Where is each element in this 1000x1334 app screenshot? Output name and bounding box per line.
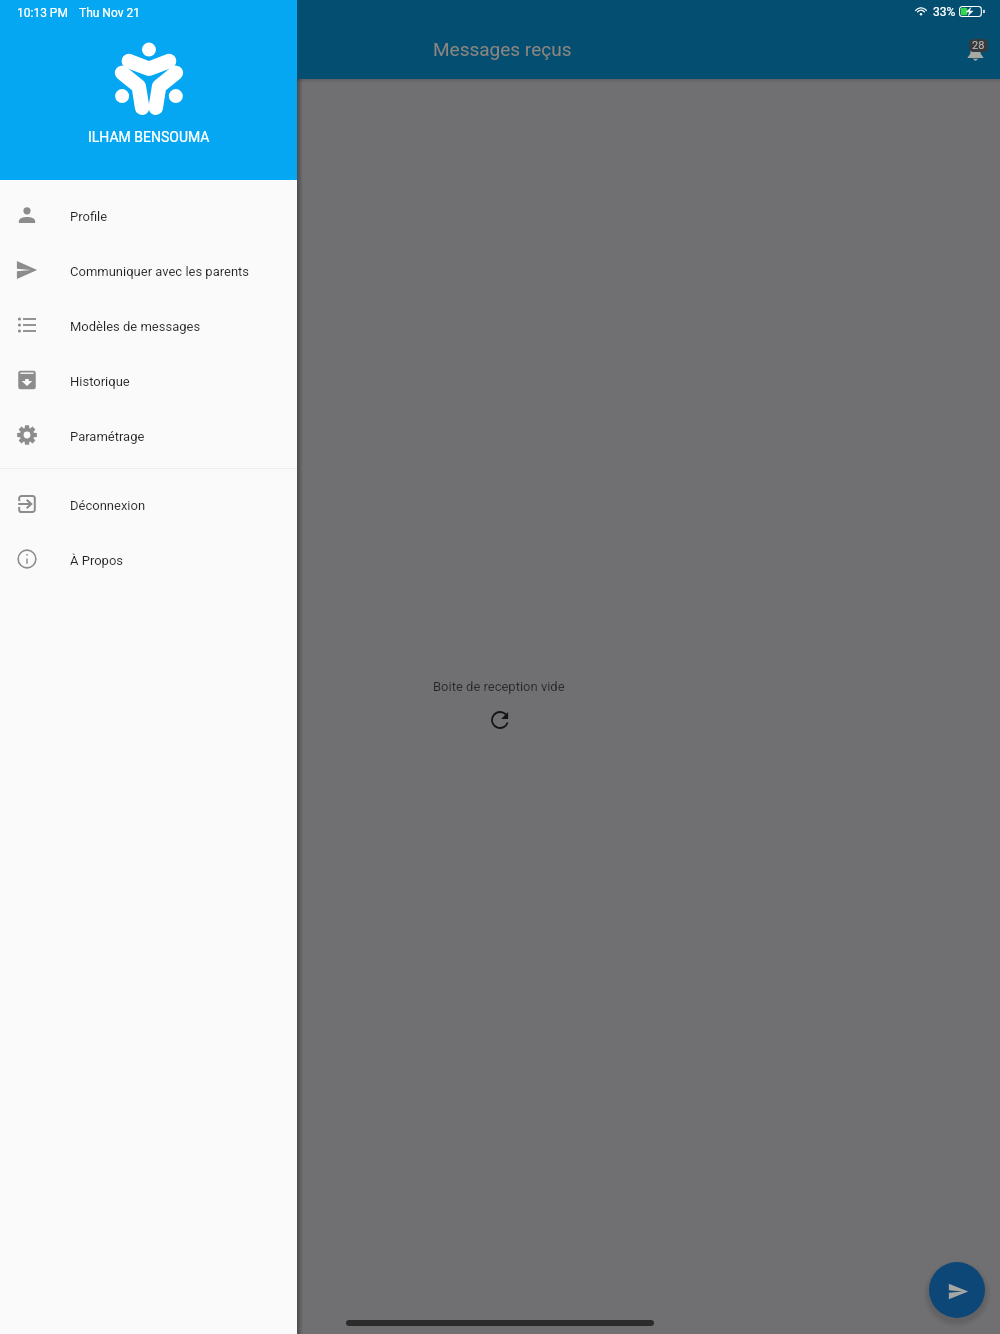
button[interactable]: Profile [0, 187, 297, 242]
button[interactable]: À Propos [0, 531, 297, 586]
staticText: 33% [933, 5, 956, 19]
staticText: Déconnexion [70, 498, 146, 513]
staticText: Profile [70, 209, 108, 224]
button[interactable]: Historique [0, 352, 297, 407]
staticText: Thu Nov 21 [79, 6, 140, 20]
staticText: 10:13 PM [17, 6, 68, 20]
staticText: Messages reçus [433, 38, 572, 60]
staticText: Boite de reception vide [433, 679, 565, 694]
button[interactable]: Modèles de messages [0, 297, 297, 352]
button[interactable]: Communiquer avec les parents [0, 242, 297, 297]
staticText: 28 [972, 39, 985, 52]
staticText: À Propos [70, 553, 124, 568]
button[interactable]: Refresh [490, 710, 510, 730]
staticText: Historique [70, 374, 130, 389]
button[interactable]: Notifications [954, 30, 998, 70]
staticText: Modèles de messages [70, 319, 201, 334]
staticText: ILHAM BENSOUMA [88, 129, 210, 145]
staticText: Communiquer avec les parents [70, 264, 250, 279]
button[interactable]: Paramétrage [0, 407, 297, 462]
staticText: Paramétrage [70, 429, 145, 444]
button[interactable]: Send message [929, 1262, 985, 1318]
button[interactable]: Déconnexion [0, 476, 297, 531]
